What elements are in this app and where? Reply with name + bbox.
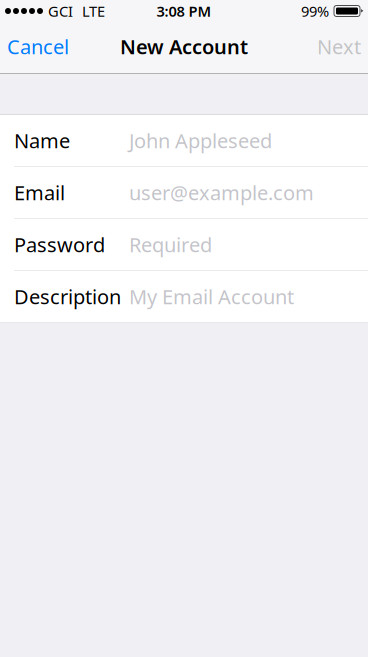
staticText: New Account [120,33,248,60]
button[interactable]: Cancel [0,22,80,71]
staticText: 3:08 PM [156,1,211,21]
button[interactable]: Email [0,167,368,218]
button[interactable]: Name [0,115,368,166]
staticText: user@example.com [129,179,314,206]
staticText: My Email Account [129,283,294,310]
staticText: Required [129,231,212,258]
staticText: Name [14,127,70,154]
staticText: Description [14,283,121,310]
button[interactable]: Next [308,22,368,71]
staticText: John Appleseed [129,127,272,154]
staticText: Password [14,231,105,258]
staticText: Cancel [7,33,69,60]
staticText: Email [14,179,65,206]
staticText: LTE [82,1,105,21]
button[interactable]: Description [0,271,368,322]
staticText: 99% [301,1,329,21]
staticText: GCI [48,1,73,21]
button[interactable]: Password [0,219,368,270]
staticText: Next [317,33,361,60]
